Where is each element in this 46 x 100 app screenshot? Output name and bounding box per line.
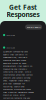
staticText: Assistant — [6, 33, 15, 37]
staticText: Assistant — [6, 46, 15, 49]
staticText: Quantum computing uses qubits that can e… — [3, 50, 34, 100]
staticText: Get Fast — [9, 2, 37, 12]
staticText: Responses — [6, 10, 39, 19]
staticText: Explain qubits — [27, 26, 41, 28]
